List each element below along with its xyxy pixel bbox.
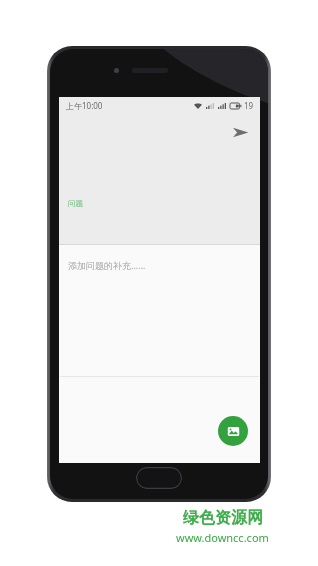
button[interactable]: Send bbox=[228, 120, 252, 144]
staticText: 上午10:00 bbox=[66, 100, 103, 111]
button[interactable]: 添加问题的补充...... bbox=[68, 259, 146, 271]
staticText: www.downcc.com bbox=[176, 530, 269, 545]
other: Home bbox=[136, 467, 182, 489]
button[interactable]: Add image bbox=[218, 416, 248, 446]
staticText: 绿色资源网 bbox=[183, 508, 263, 528]
staticText: 19 bbox=[244, 100, 254, 111]
staticText: 问题 bbox=[68, 199, 83, 208]
